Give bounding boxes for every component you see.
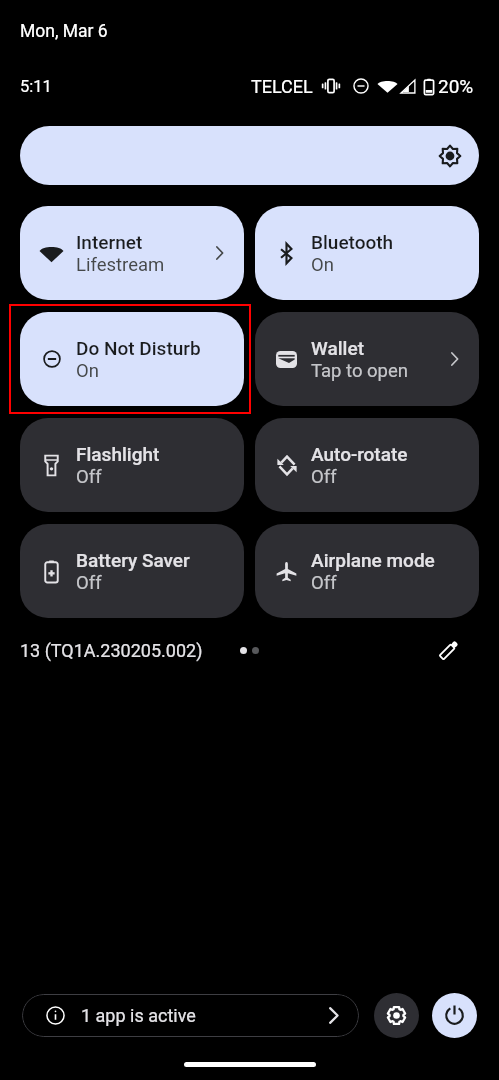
staticText: Bluetooth [311,231,394,253]
button[interactable]: 1 app is active [22,994,359,1037]
button[interactable]: Brightness [20,126,479,185]
other: Brightness [439,145,461,167]
staticText: Do Not Disturb [76,337,201,359]
staticText: Off [76,572,102,594]
staticText: Auto-rotate [311,443,408,465]
button[interactable]: Bluetooth [255,206,479,300]
button[interactable]: Auto-rotate [255,418,479,512]
button[interactable]: Battery Saver [20,524,244,618]
button[interactable]: Edit tiles [435,636,463,664]
staticText: On [311,254,334,276]
button[interactable]: Airplane mode [255,524,479,618]
staticText: Off [311,466,337,488]
staticText: Wallet [311,337,364,359]
staticText: Flashlight [76,443,160,465]
staticText: Off [311,572,337,594]
staticText: On [76,360,99,382]
staticText: Off [76,466,102,488]
button[interactable]: Power [432,993,477,1038]
button[interactable]: Settings [374,993,419,1038]
staticText: 5:11 [20,77,52,96]
button[interactable]: Internet [20,206,244,300]
button[interactable]: Do Not Disturb [20,312,244,406]
staticText: Tap to open [311,360,409,382]
staticText: Internet [76,231,143,253]
button[interactable]: Wallet [255,312,479,406]
staticText: Battery Saver [76,549,190,571]
staticText: Airplane mode [311,549,435,571]
staticText: Lifestream [76,254,165,276]
staticText: Mon, Mar 6 [20,21,108,42]
staticText: 1 app is active [81,1005,196,1026]
button[interactable]: Flashlight [20,418,244,512]
staticText: TELCEL [251,76,313,97]
staticText: 13 (TQ1A.230205.002) [20,640,203,661]
staticText: 20% [438,75,474,97]
